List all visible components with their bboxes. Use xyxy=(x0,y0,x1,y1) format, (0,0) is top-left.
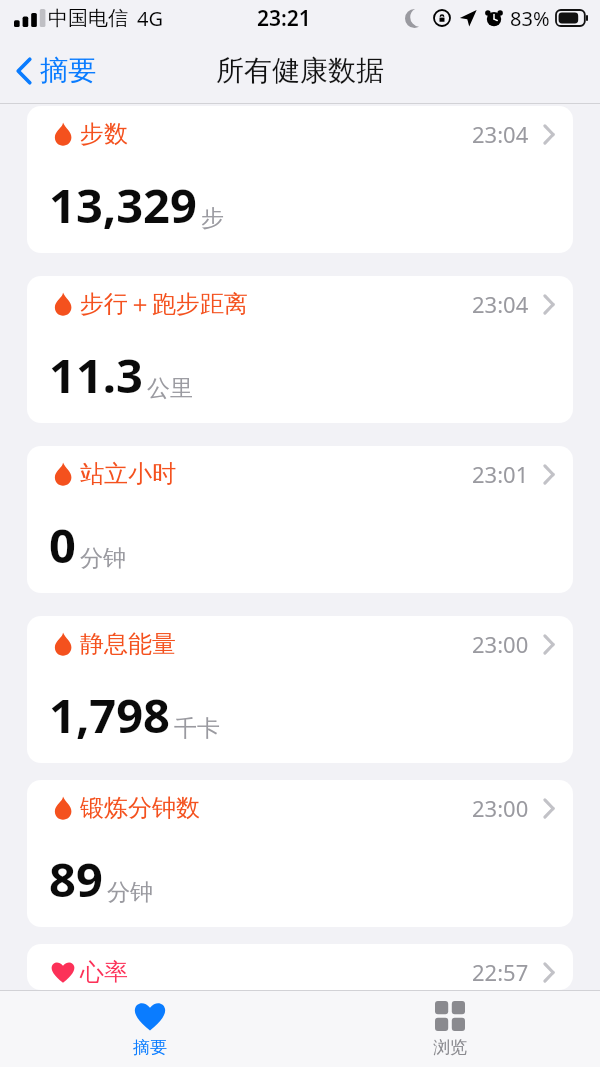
staticText: 静息能量 xyxy=(80,629,176,659)
staticText: 步 xyxy=(201,204,224,233)
button[interactable]: 步行＋跑步距离 xyxy=(27,276,573,423)
staticText: 23:00 xyxy=(472,793,529,823)
staticText: 分钟 xyxy=(107,878,153,907)
staticText: 千卡 xyxy=(174,714,220,743)
button[interactable]: 心率 xyxy=(27,944,573,990)
button[interactable]: 步数 xyxy=(27,106,573,253)
button[interactable]: 站立小时 xyxy=(27,446,573,593)
staticText: 4G xyxy=(137,5,163,32)
staticText: 23:21 xyxy=(257,4,311,33)
button[interactable]: 静息能量 xyxy=(27,616,573,763)
staticText: 1,798 xyxy=(49,683,170,747)
staticText: 23:04 xyxy=(472,119,529,149)
staticText: 锻炼分钟数 xyxy=(80,793,200,823)
staticText: 分钟 xyxy=(80,544,126,573)
staticText: 11.3 xyxy=(49,343,143,407)
staticText: 13,329 xyxy=(49,173,197,237)
staticText: 83% xyxy=(510,5,550,32)
staticText: 摘要 xyxy=(40,53,96,88)
staticText: 站立小时 xyxy=(80,459,176,489)
button[interactable]: 浏览 xyxy=(300,991,600,1067)
staticText: 89 xyxy=(49,847,103,911)
button[interactable]: 摘要 xyxy=(0,991,300,1067)
staticText: 心率 xyxy=(80,957,128,987)
staticText: 步行＋跑步距离 xyxy=(80,289,248,319)
staticText: 23:01 xyxy=(472,459,529,489)
staticText: 所有健康数据 xyxy=(216,53,384,88)
staticText: 22:57 xyxy=(472,957,529,987)
staticText: 浏览 xyxy=(433,1037,467,1058)
staticText: 0 xyxy=(49,513,76,577)
staticText: 23:04 xyxy=(472,289,529,319)
staticText: 中国电信 xyxy=(48,6,128,31)
button[interactable]: 摘要 xyxy=(12,49,100,92)
staticText: 公里 xyxy=(147,374,193,403)
staticText: 摘要 xyxy=(133,1037,167,1058)
staticText: 23:00 xyxy=(472,629,529,659)
button[interactable]: 锻炼分钟数 xyxy=(27,780,573,927)
staticText: 步数 xyxy=(80,119,128,149)
